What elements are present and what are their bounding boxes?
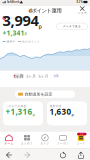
staticText: 6ヶ月 [38, 73, 48, 79]
staticText: これまでの損益 [6, 105, 27, 108]
staticText: 1年 [53, 73, 59, 79]
button[interactable]: クーポン [72, 133, 90, 147]
button[interactable]: 6ヶ月 [38, 73, 49, 79]
button[interactable]: 自動追加を設定 [15, 90, 75, 98]
button[interactable]: 運用可能 [47, 101, 87, 125]
staticText: シェア [78, 11, 87, 15]
button[interactable]: 再読み込み [54, 149, 72, 160]
button[interactable]: 戻る [0, 149, 18, 160]
staticText: SoftBank [7, 0, 19, 4]
staticText: クーポン [80, 133, 84, 135]
button[interactable]: ホーム [0, 133, 18, 147]
staticText: d [3, 16, 5, 20]
staticText: おトク [40, 142, 49, 145]
button[interactable]: 1年 [50, 73, 61, 79]
staticText: コード [76, 142, 85, 145]
staticText: +1,341 [2, 29, 24, 37]
button[interactable]: クーポン [54, 133, 72, 147]
staticText: 1ヶ月 [13, 73, 23, 79]
staticText: 運用可能 [50, 105, 62, 108]
staticText: 元のポイント [22, 40, 40, 43]
staticText: ホーム [4, 142, 13, 145]
button[interactable]: おトク [36, 133, 54, 147]
staticText: まとめて [21, 142, 33, 145]
staticText: 1,630 [50, 106, 72, 117]
button[interactable]: データで見る [56, 23, 87, 30]
button[interactable]: まとめて [18, 133, 36, 147]
staticText: p [38, 23, 41, 30]
staticText: ポイント運用中 [7, 16, 28, 20]
staticText: データで見る [63, 25, 81, 28]
button[interactable]: 1ヶ月 [13, 73, 24, 79]
staticText: p [33, 112, 35, 117]
button[interactable]: シェア [76, 6, 89, 15]
button[interactable]: 進む [18, 149, 36, 160]
staticText: 運用中 [6, 40, 15, 43]
staticText: p [72, 112, 74, 117]
button[interactable]: 共有 [72, 149, 90, 160]
staticText: p [24, 30, 26, 36]
staticText: 3,994 [2, 10, 38, 30]
staticText: 自動追加を設定 [24, 92, 52, 97]
staticText: 82% [76, 0, 82, 4]
staticText: クーポン [57, 142, 69, 145]
staticText: +1,316 [6, 106, 33, 117]
staticText: 3ヶ月 [26, 73, 36, 79]
button[interactable]: これまでの損益 [3, 101, 43, 125]
staticText: dポイント運用 [28, 7, 61, 14]
button[interactable]: 3ヶ月 [25, 73, 36, 79]
